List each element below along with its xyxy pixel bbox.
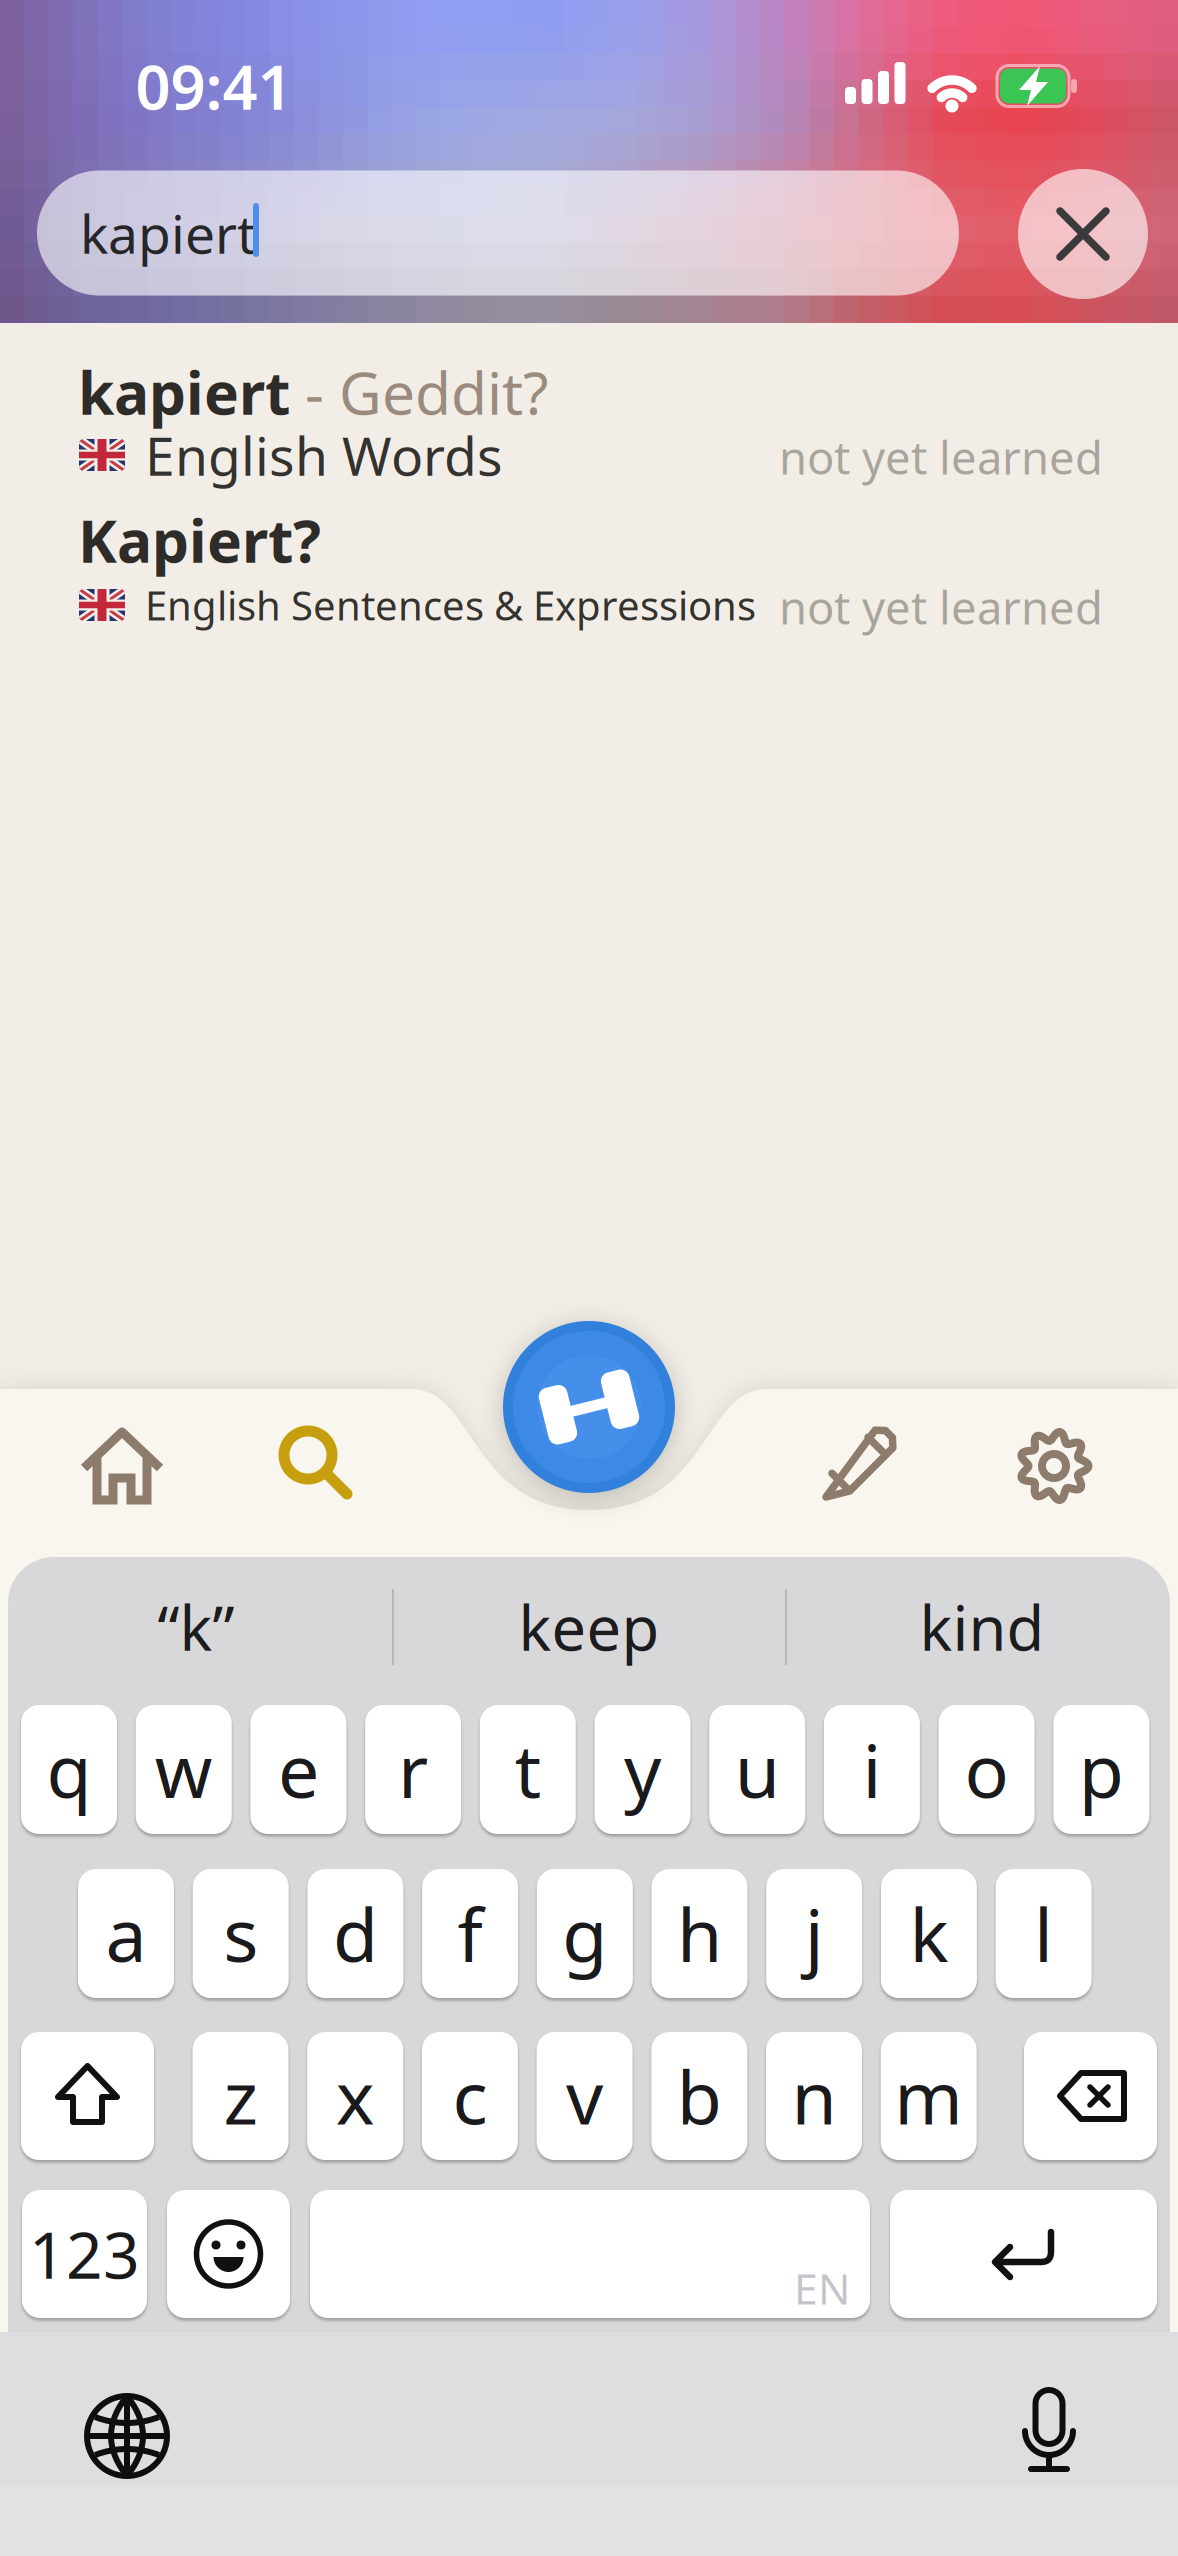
staticText: v	[566, 2047, 603, 2145]
button[interactable]: x	[307, 2032, 403, 2160]
staticText: r	[398, 1721, 428, 1818]
button[interactable]	[1017, 1429, 1091, 1503]
button[interactable]: k	[881, 1869, 977, 1998]
staticText: q	[46, 1721, 91, 1818]
button[interactable]	[167, 2190, 290, 2318]
staticText: Kapiert?	[78, 501, 321, 579]
staticText: 09:41	[135, 45, 292, 127]
button[interactable]: i	[824, 1705, 920, 1834]
staticText: - Geddit?	[290, 353, 548, 431]
staticText: l	[1034, 1885, 1053, 1982]
staticText: kapiert	[80, 198, 256, 268]
button[interactable]: keep	[404, 1582, 774, 1672]
staticText: English Words	[145, 420, 503, 490]
staticText: 123	[29, 2211, 140, 2296]
button[interactable]: o	[939, 1705, 1035, 1834]
button[interactable]: z	[192, 2032, 288, 2160]
button[interactable]	[822, 1431, 892, 1501]
staticText: b	[677, 2047, 722, 2145]
button[interactable]: q	[21, 1705, 117, 1834]
staticText: y	[624, 1721, 661, 1818]
staticText: t	[515, 1721, 541, 1818]
button[interactable]: s	[193, 1869, 289, 1998]
staticText: x	[336, 2047, 375, 2145]
button[interactable]: c	[422, 2032, 518, 2160]
staticText: h	[677, 1885, 722, 1982]
staticText: kind	[919, 1586, 1044, 1668]
button[interactable]: p	[1053, 1705, 1149, 1834]
button[interactable]: “k”	[11, 1582, 381, 1672]
staticText: j	[805, 1885, 824, 1982]
staticText: s	[223, 1885, 258, 1982]
staticText: keep	[518, 1586, 659, 1668]
button[interactable]: t	[480, 1705, 576, 1834]
button[interactable]: a	[78, 1869, 174, 1998]
staticText: EN	[794, 2260, 850, 2316]
staticText: c	[452, 2047, 487, 2145]
button[interactable]: u	[709, 1705, 805, 1834]
button[interactable]	[1024, 2032, 1157, 2160]
staticText: m	[894, 2047, 963, 2145]
staticText: w	[155, 1721, 213, 1818]
staticText: “k”	[157, 1586, 234, 1668]
staticText: a	[105, 1885, 146, 1982]
button[interactable]: EN	[310, 2190, 870, 2318]
button[interactable]	[1018, 2389, 1088, 2479]
staticText: f	[458, 1885, 483, 1982]
button[interactable]: h	[651, 1869, 747, 1998]
button[interactable]: kapiert	[40, 352, 1138, 498]
staticText: not yet learned	[779, 577, 1103, 637]
button[interactable]: l	[996, 1869, 1092, 1998]
button[interactable]	[1018, 169, 1148, 299]
staticText: z	[223, 2047, 257, 2145]
staticText: o	[965, 1721, 1009, 1818]
button[interactable]	[72, 1428, 172, 1504]
button[interactable]	[503, 1321, 675, 1493]
button[interactable]: m	[881, 2032, 977, 2160]
staticText: English Sentences & Expressions	[145, 578, 756, 631]
button[interactable]: Kapiert?	[40, 498, 1138, 650]
button[interactable]	[82, 2391, 172, 2481]
staticText: kapiert	[78, 353, 290, 431]
staticText: i	[862, 1721, 881, 1818]
button[interactable]: y	[594, 1705, 690, 1834]
button[interactable]	[890, 2190, 1157, 2318]
staticText: d	[333, 1885, 378, 1982]
button[interactable]: f	[422, 1869, 518, 1998]
staticText: n	[791, 2047, 836, 2145]
staticText: u	[735, 1721, 780, 1818]
button[interactable]: r	[365, 1705, 461, 1834]
button[interactable]	[283, 1430, 351, 1498]
button[interactable]: v	[537, 2032, 633, 2160]
staticText: not yet learned	[779, 427, 1103, 487]
button[interactable]: 123	[22, 2190, 147, 2318]
button[interactable]: g	[537, 1869, 633, 1998]
button[interactable]: j	[766, 1869, 862, 1998]
button[interactable]	[21, 2032, 154, 2160]
button[interactable]: e	[250, 1705, 346, 1834]
button[interactable]: b	[651, 2032, 747, 2160]
button[interactable]: w	[136, 1705, 232, 1834]
staticText: p	[1079, 1721, 1124, 1818]
button[interactable]: d	[307, 1869, 403, 1998]
staticText: g	[562, 1885, 607, 1982]
button[interactable]: kind	[797, 1582, 1167, 1672]
staticText: e	[278, 1721, 319, 1818]
staticText: k	[909, 1885, 948, 1982]
button[interactable]: n	[766, 2032, 862, 2160]
